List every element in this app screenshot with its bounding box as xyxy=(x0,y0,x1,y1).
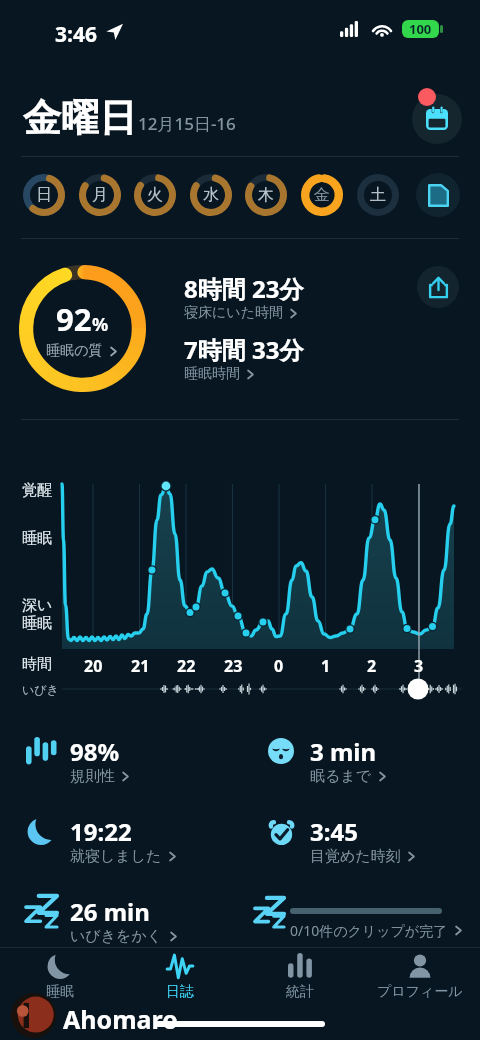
button[interactable]: 月 xyxy=(78,173,122,217)
staticText: 金 xyxy=(314,185,330,205)
staticText: 就寝しました xyxy=(70,847,162,866)
staticText: 26 min xyxy=(70,895,150,928)
staticText: 8時間 23分 xyxy=(184,272,304,305)
staticText: 目覚めた時刻 xyxy=(310,847,401,866)
button[interactable]: Notes xyxy=(416,173,460,217)
staticText: 日 xyxy=(36,185,52,205)
button[interactable]: プロフィール xyxy=(360,949,480,1002)
staticText: 深い xyxy=(22,596,53,615)
staticText: 12月15日-16 xyxy=(138,112,236,135)
staticText: 睡眠 xyxy=(46,983,74,1001)
staticText: 3 xyxy=(414,655,424,677)
staticText: プロフィール xyxy=(377,983,463,1001)
staticText: 木 xyxy=(258,185,274,205)
staticText: 3 min xyxy=(310,735,377,768)
staticText: 金曜日 xyxy=(23,94,137,142)
button[interactable]: 日 xyxy=(22,173,66,217)
staticText: 睡眠 xyxy=(22,529,52,548)
staticText: 20 xyxy=(84,655,103,677)
button[interactable]: 土 xyxy=(356,173,400,217)
staticText: 覚醒 xyxy=(22,481,52,500)
staticText: 寝床にいた時間 xyxy=(184,304,283,322)
staticText: 7時間 33分 xyxy=(184,333,304,366)
button[interactable]: 8時間 23分 xyxy=(184,272,304,323)
staticText: 19:22 xyxy=(70,815,132,848)
button[interactable]: 26 min xyxy=(0,877,240,947)
staticText: いびき xyxy=(22,682,59,697)
button[interactable]: 木 xyxy=(244,173,288,217)
button[interactable]: 98% xyxy=(0,717,240,787)
staticText: 21 xyxy=(131,655,150,677)
staticText: 土 xyxy=(370,185,386,205)
staticText: 睡眠 xyxy=(22,614,52,633)
button[interactable]: 睡眠 xyxy=(0,949,120,1002)
staticText: 睡眠時間 xyxy=(184,365,240,383)
staticText: いびきをかく xyxy=(70,927,163,946)
staticText: 水 xyxy=(203,185,219,205)
button[interactable]: 0/10件のクリップが完了 xyxy=(240,877,480,947)
staticText: 1 xyxy=(321,655,331,677)
staticText: 100 xyxy=(409,20,432,38)
staticText: 火 xyxy=(147,185,163,205)
staticText: 規則性 xyxy=(70,767,115,786)
staticText: 日誌 xyxy=(166,983,194,1001)
staticText: 2 xyxy=(367,655,377,677)
staticText: 0/10件のクリップが完了 xyxy=(290,921,448,940)
staticText: 3:45 xyxy=(310,815,358,848)
staticText: % xyxy=(92,312,109,337)
staticText: 月 xyxy=(92,185,108,205)
button[interactable]: 統計 xyxy=(240,949,360,1002)
button[interactable]: 7時間 33分 xyxy=(184,333,304,384)
staticText: 統計 xyxy=(286,983,314,1001)
staticText: 92 xyxy=(56,298,92,340)
button[interactable]: 日誌 xyxy=(120,949,240,1002)
staticText: 22 xyxy=(177,655,196,677)
staticText: 0 xyxy=(274,655,284,677)
staticText: 眠るまで xyxy=(310,767,372,786)
button[interactable]: 水 xyxy=(189,173,233,217)
button[interactable]: Share xyxy=(417,266,459,308)
staticText: Ahomaro xyxy=(63,1002,178,1036)
button[interactable]: Calendar xyxy=(412,94,462,144)
button[interactable]: 19:22 xyxy=(0,797,240,867)
staticText: 23 xyxy=(224,655,243,677)
button[interactable]: 3 min xyxy=(240,717,480,787)
staticText: 時間 xyxy=(22,655,52,674)
staticText: 98% xyxy=(70,735,120,768)
button[interactable]: 3:45 xyxy=(240,797,480,867)
button[interactable]: 92 xyxy=(19,265,146,392)
button[interactable]: 金 xyxy=(300,173,344,217)
staticText: 3:46 xyxy=(55,20,97,49)
button[interactable]: 火 xyxy=(133,173,177,217)
staticText: 睡眠の質 xyxy=(46,342,103,360)
